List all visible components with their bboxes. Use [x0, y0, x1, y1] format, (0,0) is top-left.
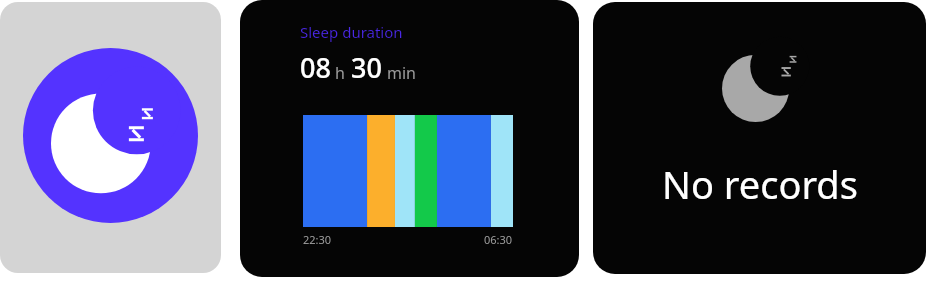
staticText: 22:30	[303, 232, 332, 247]
button[interactable]: No records	[593, 2, 926, 274]
button[interactable]: Sleep duration	[240, 0, 579, 277]
button[interactable]: Sleep app icon	[0, 2, 221, 273]
staticText: Sleep duration	[300, 22, 403, 42]
staticText: No records	[662, 158, 858, 210]
button[interactable]: Sleep stages chart	[303, 115, 513, 227]
staticText: min	[387, 62, 416, 84]
staticText: h	[335, 62, 345, 84]
staticText: 30	[351, 49, 382, 86]
staticText: 08	[300, 49, 331, 86]
staticText: 06:30	[484, 232, 513, 247]
